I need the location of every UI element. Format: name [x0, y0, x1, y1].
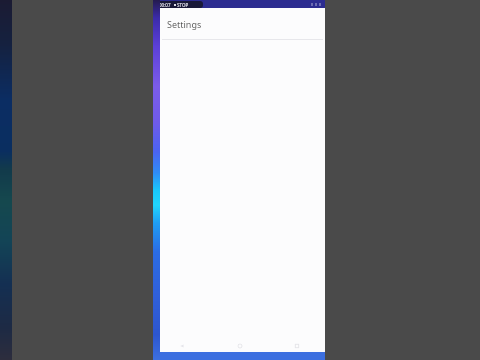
staticText: Settings: [167, 18, 202, 30]
staticText: STOP: [177, 2, 189, 8]
button[interactable]: Settings: [153, 8, 325, 40]
staticText: 00:07: [159, 2, 171, 8]
button[interactable]: Back: [153, 340, 211, 352]
